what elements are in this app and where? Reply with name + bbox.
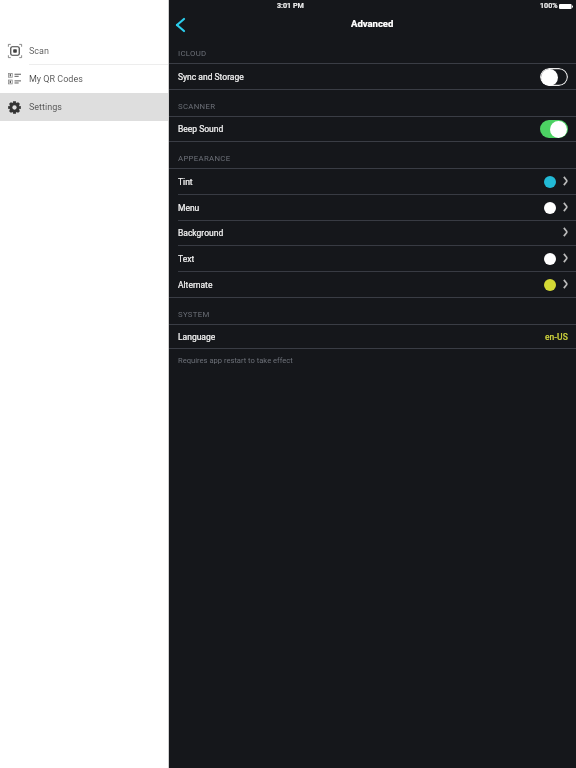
button[interactable]: Sync and Storage — [169, 64, 576, 89]
staticText: Text — [178, 254, 195, 264]
staticText: en-US — [545, 332, 568, 342]
staticText: Scan — [29, 46, 49, 57]
staticText: 3:01 PM — [277, 1, 304, 9]
staticText: Background — [178, 228, 224, 238]
staticText: Settings — [29, 102, 62, 113]
button[interactable]: Beep Sound — [169, 117, 576, 141]
staticText: Tint — [178, 177, 193, 187]
staticText: Language — [178, 332, 216, 342]
button[interactable]: Menu — [169, 195, 576, 220]
staticText: My QR Codes — [29, 74, 83, 85]
staticText: Sync and Storage — [178, 72, 244, 82]
button[interactable]: Tint — [169, 169, 576, 194]
staticText: Menu — [178, 203, 200, 213]
staticText: 100% — [540, 1, 558, 9]
staticText: Requires app restart to take effect — [178, 356, 293, 365]
button[interactable]: My QR Codes — [0, 65, 169, 93]
button[interactable]: Toggle off — [540, 68, 568, 86]
staticText: ICLOUD — [178, 49, 207, 58]
button[interactable]: Toggle on — [540, 120, 568, 138]
staticText: Alternate — [178, 280, 213, 290]
staticText: SYSTEM — [178, 310, 210, 319]
staticText: APPEARANCE — [178, 154, 231, 163]
button[interactable]: Back — [170, 15, 190, 35]
button[interactable]: Language — [169, 325, 576, 348]
button[interactable]: Text — [169, 246, 576, 271]
button[interactable]: Settings — [0, 93, 169, 121]
staticText: Advanced — [351, 18, 394, 29]
button[interactable]: Scan — [0, 37, 169, 65]
button[interactable]: Alternate — [169, 272, 576, 297]
staticText: SCANNER — [178, 102, 216, 111]
button[interactable]: Background — [169, 221, 576, 245]
staticText: Beep Sound — [178, 124, 224, 134]
